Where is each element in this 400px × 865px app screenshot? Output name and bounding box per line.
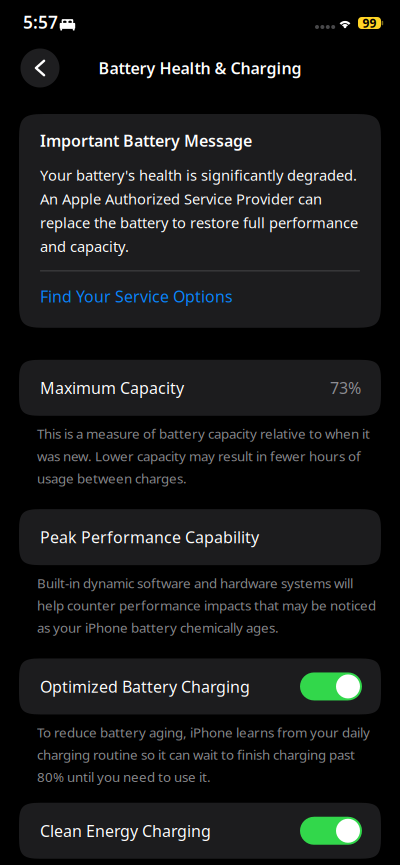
staticText: Built-in dynamic software and hardware s… [37,574,376,636]
staticText: Find Your Service Options [40,286,233,307]
staticText: Battery Health & Charging [98,57,301,79]
staticText: Maximum Capacity [40,377,184,398]
button[interactable]: Peak Performance Capability [19,509,381,565]
staticText: To reduce battery aging, iPhone learns f… [37,723,370,786]
button[interactable]: Find Your Service Options [40,272,233,307]
button[interactable]: Back [20,48,59,87]
staticText: Important Battery Message [40,130,252,151]
staticText: 73% [330,377,361,398]
staticText: Optimized Battery Charging [40,676,250,697]
button[interactable]: Optimized Battery Charging [19,658,381,714]
staticText: Your battery's health is significantly d… [40,165,358,256]
staticText: 5:57 [23,10,58,33]
staticText: Peak Performance Capability [40,526,259,548]
button[interactable]: Clean Energy Charging [19,803,381,859]
staticText: This is a measure of battery capacity re… [37,425,370,487]
button[interactable]: Maximum Capacity [19,360,381,416]
staticText: Clean Energy Charging [40,820,211,841]
staticText: 99 [362,15,376,31]
